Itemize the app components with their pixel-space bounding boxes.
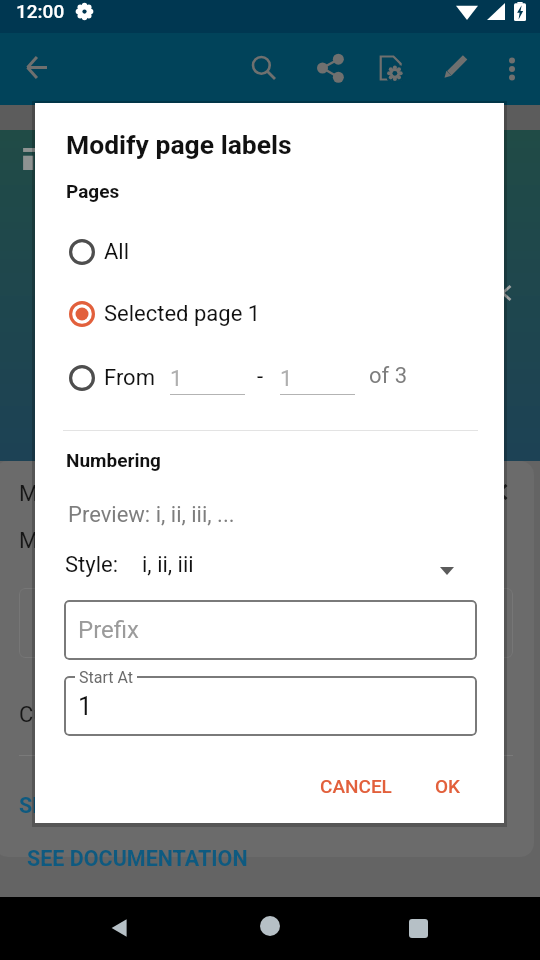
- staticText: SEE DOCUMENTATION: [27, 846, 248, 871]
- button[interactable]: Search: [244, 48, 284, 88]
- button[interactable]: OK: [423, 766, 473, 806]
- staticText: SET PAGE LABELS: [19, 793, 199, 818]
- staticText: Preview: i, ii, iii, ...: [68, 502, 235, 528]
- button[interactable]: Multiple page labels: [0, 461, 534, 857]
- button[interactable]: Prefix: [64, 600, 477, 660]
- button[interactable]: Recents: [409, 919, 428, 938]
- staticText: Style:: [65, 552, 119, 578]
- button[interactable]: Document settings: [372, 48, 412, 88]
- staticText: CANCEL: [320, 775, 392, 797]
- button[interactable]: Home: [260, 916, 280, 936]
- staticText: 12:00: [16, 0, 65, 22]
- staticText: Modify page labels: [19, 528, 204, 554]
- staticText: 1: [170, 366, 183, 392]
- staticText: From: [104, 365, 155, 391]
- button[interactable]: 1: [170, 356, 245, 400]
- staticText: i, ii, iii: [142, 552, 194, 578]
- button[interactable]: CANCEL: [308, 766, 404, 806]
- button[interactable]: All: [35, 230, 504, 274]
- staticText: Multiple page labels: [19, 481, 215, 507]
- staticText: Numbering: [66, 449, 161, 471]
- staticText: 1: [78, 692, 93, 721]
- staticText: OK: [435, 775, 461, 797]
- staticText: Prefix: [78, 616, 139, 644]
- button[interactable]: From page range: [69, 365, 95, 391]
- button[interactable]: More options: [496, 53, 527, 84]
- staticText: -: [257, 364, 264, 390]
- staticText: of 3: [369, 363, 408, 389]
- button[interactable]: Selected page 1: [35, 292, 504, 336]
- button[interactable]: Style:: [35, 544, 504, 582]
- staticText: Modify page labels: [66, 129, 292, 160]
- staticText: Pages: [66, 180, 120, 202]
- button[interactable]: SEE DOCUMENTATION: [27, 846, 248, 871]
- staticText: Current label: i: [19, 702, 160, 728]
- staticText: Start At: [79, 668, 133, 684]
- staticText: Selected page 1: [104, 301, 261, 327]
- button[interactable]: Edit: [436, 46, 476, 86]
- button[interactable]: Back: [16, 47, 57, 88]
- staticText: All: [104, 239, 130, 265]
- button[interactable]: Share: [308, 48, 348, 88]
- button[interactable]: Back: [109, 917, 131, 939]
- button[interactable]: 1: [64, 676, 477, 736]
- staticText: 1: [280, 366, 293, 392]
- button[interactable]: 1: [280, 356, 355, 400]
